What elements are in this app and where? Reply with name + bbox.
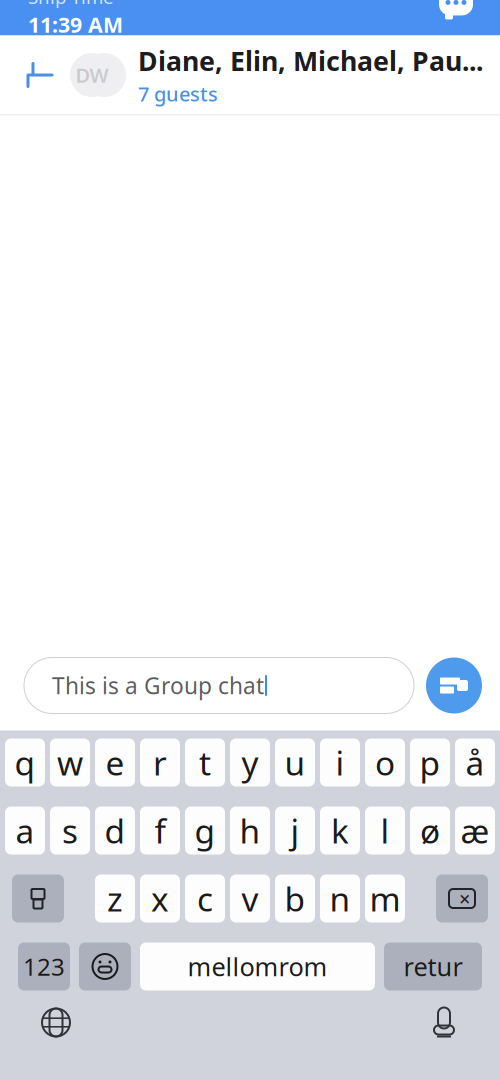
button[interactable]: o bbox=[365, 738, 405, 786]
button[interactable]: l bbox=[365, 806, 405, 854]
staticText: x bbox=[151, 876, 169, 921]
staticText: m bbox=[369, 876, 400, 921]
staticText: f bbox=[154, 808, 165, 853]
staticText: j bbox=[290, 808, 299, 853]
button[interactable]: s bbox=[50, 806, 90, 854]
button[interactable]: æ bbox=[455, 806, 495, 854]
button[interactable]: Send bbox=[426, 657, 482, 713]
button[interactable]: Emoji bbox=[79, 942, 131, 990]
staticText: e bbox=[105, 740, 124, 785]
button[interactable]: a bbox=[5, 806, 45, 854]
button[interactable]: h bbox=[230, 806, 270, 854]
button[interactable]: Delete bbox=[436, 874, 488, 922]
button[interactable]: t bbox=[185, 738, 225, 786]
staticText: c bbox=[197, 876, 213, 921]
button[interactable]: c bbox=[185, 874, 225, 922]
button[interactable]: mellomrom bbox=[140, 942, 375, 990]
staticText: 11:39 AM bbox=[28, 10, 123, 38]
staticText: ø bbox=[420, 808, 440, 853]
button[interactable]: w bbox=[50, 738, 90, 786]
staticText: r bbox=[153, 740, 167, 785]
staticText: n bbox=[329, 876, 350, 921]
button[interactable]: x bbox=[140, 874, 180, 922]
staticText: d bbox=[104, 808, 125, 853]
staticText: This is a Group chat bbox=[52, 670, 264, 700]
button[interactable]: g bbox=[185, 806, 225, 854]
button[interactable]: å bbox=[455, 738, 495, 786]
staticText: b bbox=[284, 876, 305, 921]
staticText: 7 guests bbox=[138, 80, 218, 107]
button[interactable]: u bbox=[275, 738, 315, 786]
staticText: k bbox=[331, 808, 349, 853]
button[interactable]: j bbox=[275, 806, 315, 854]
staticText: 123 bbox=[23, 951, 65, 982]
button[interactable]: i bbox=[320, 738, 360, 786]
button[interactable]: k bbox=[320, 806, 360, 854]
button[interactable]: p bbox=[410, 738, 450, 786]
staticText: i bbox=[335, 740, 344, 785]
staticText: y bbox=[241, 740, 258, 785]
button[interactable]: b bbox=[275, 874, 315, 922]
staticText: q bbox=[14, 740, 35, 785]
button[interactable]: Change keyboard bbox=[32, 998, 80, 1046]
button[interactable]: y bbox=[230, 738, 270, 786]
staticText: p bbox=[419, 740, 440, 785]
button[interactable]: Back bbox=[14, 53, 66, 97]
button[interactable]: This is a Group chat bbox=[24, 657, 414, 713]
staticText: g bbox=[194, 808, 215, 853]
button[interactable]: r bbox=[140, 738, 180, 786]
staticText: retur bbox=[403, 950, 462, 983]
button[interactable]: z bbox=[95, 874, 135, 922]
button[interactable]: v bbox=[230, 874, 270, 922]
staticText: Ship Time bbox=[28, 0, 114, 9]
button[interactable]: f bbox=[140, 806, 180, 854]
button[interactable]: Dictate bbox=[420, 998, 468, 1046]
staticText: v bbox=[241, 876, 258, 921]
button[interactable]: Shift bbox=[12, 874, 64, 922]
staticText: × bbox=[459, 885, 470, 912]
button[interactable]: d bbox=[95, 806, 135, 854]
button[interactable]: retur bbox=[384, 942, 482, 990]
staticText: s bbox=[62, 808, 78, 853]
staticText: u bbox=[284, 740, 305, 785]
button[interactable]: m bbox=[365, 874, 405, 922]
button[interactable]: 123 bbox=[18, 942, 70, 990]
staticText: z bbox=[107, 876, 123, 921]
staticText: å bbox=[465, 740, 484, 785]
staticText: t bbox=[199, 740, 211, 785]
staticText: h bbox=[239, 808, 260, 853]
staticText: w bbox=[57, 740, 83, 785]
staticText: DW bbox=[75, 62, 108, 88]
staticText: mellomrom bbox=[187, 950, 327, 983]
staticText: o bbox=[375, 740, 395, 785]
button[interactable]: ø bbox=[410, 806, 450, 854]
staticText: æ bbox=[460, 808, 489, 853]
button[interactable]: e bbox=[95, 738, 135, 786]
button[interactable]: n bbox=[320, 874, 360, 922]
staticText: Diane, Elin, Michael, Pau... bbox=[138, 43, 483, 78]
staticText: l bbox=[380, 808, 389, 853]
button[interactable]: q bbox=[5, 738, 45, 786]
button[interactable]: Messages bbox=[434, 0, 478, 22]
staticText: a bbox=[15, 808, 34, 853]
